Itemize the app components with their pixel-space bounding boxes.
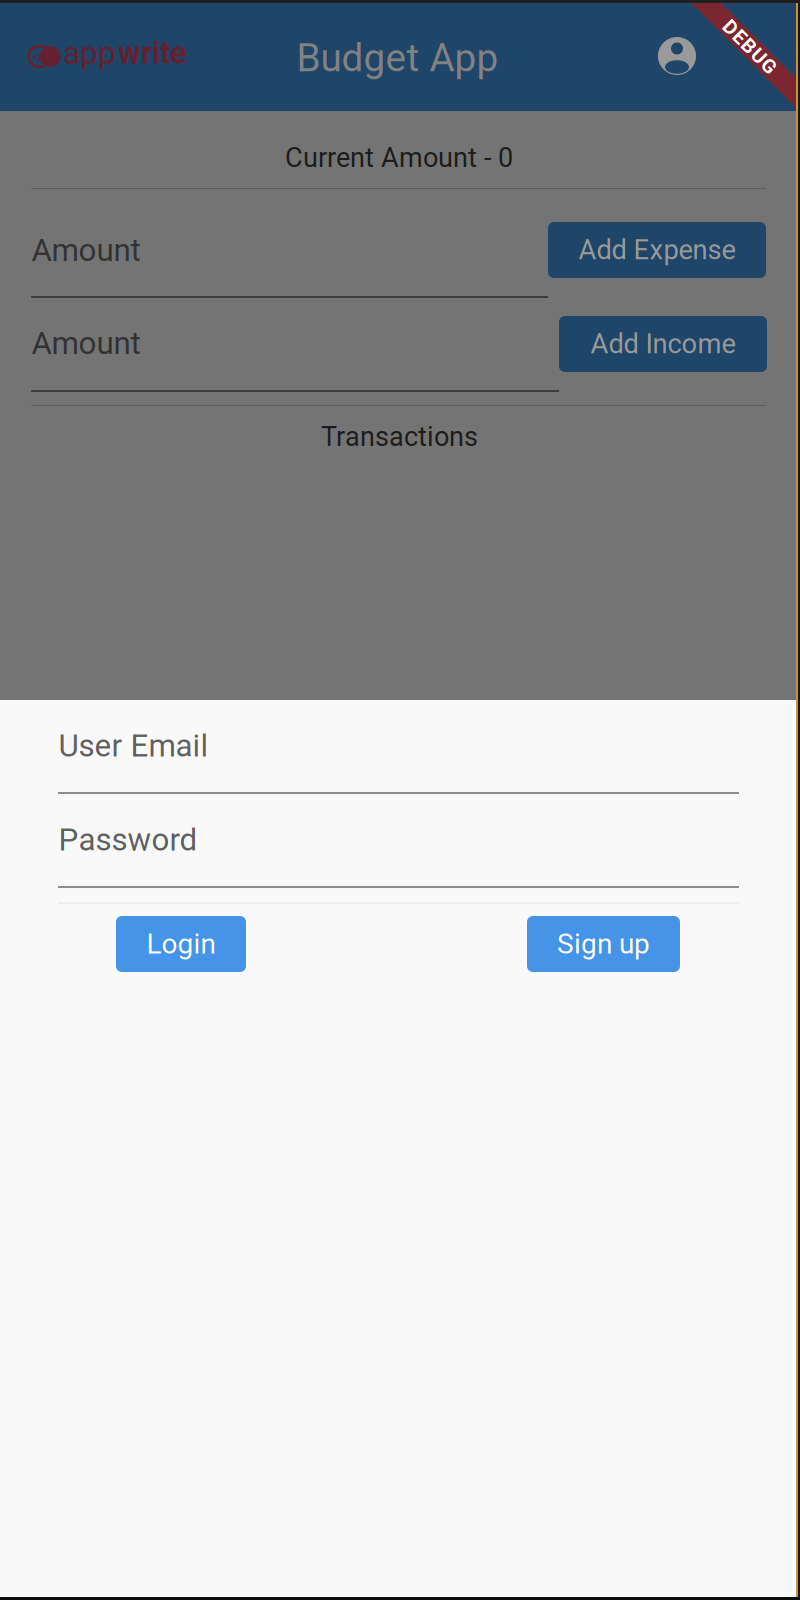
staticText: Amount [31, 232, 140, 269]
button[interactable]: Add Expense [548, 222, 766, 278]
staticText: DEBUG [716, 35, 784, 59]
button[interactable]: Sign up [527, 916, 680, 972]
staticText: Current Amount - 0 [285, 142, 513, 174]
staticText: Transactions [321, 421, 478, 453]
staticText: Budget App [296, 35, 498, 81]
staticText: Login [146, 928, 215, 960]
staticText: Add Income [590, 328, 735, 360]
staticText: app [63, 34, 116, 71]
staticText: Sign up [557, 928, 650, 960]
staticText: Amount [31, 325, 140, 362]
button[interactable]: Account [641, 20, 713, 92]
button[interactable]: Add Income [559, 316, 767, 372]
staticText: Password [58, 821, 197, 858]
button[interactable]: Login [116, 916, 246, 972]
staticText: User Email [58, 727, 208, 764]
staticText: Add Expense [578, 234, 735, 266]
staticText: write [118, 35, 187, 71]
